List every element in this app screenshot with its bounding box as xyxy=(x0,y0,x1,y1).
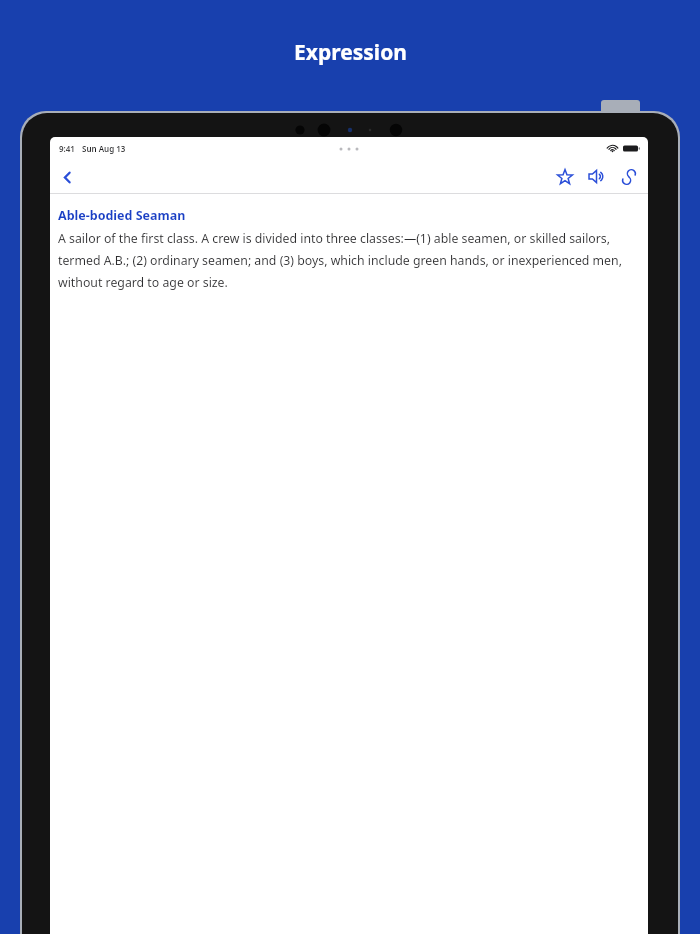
button[interactable]: Favorite xyxy=(549,161,580,192)
button[interactable]: Speak xyxy=(581,161,612,192)
staticText: Expression xyxy=(294,38,407,67)
staticText: Sun Aug 13 xyxy=(82,143,126,154)
button[interactable]: Copy link xyxy=(613,161,644,192)
staticText: 9:41 xyxy=(59,143,75,154)
staticText: Able-bodied Seaman xyxy=(58,207,186,224)
staticText: A sailor of the first class. A crew is d… xyxy=(58,230,640,290)
button[interactable]: Back xyxy=(52,162,82,192)
